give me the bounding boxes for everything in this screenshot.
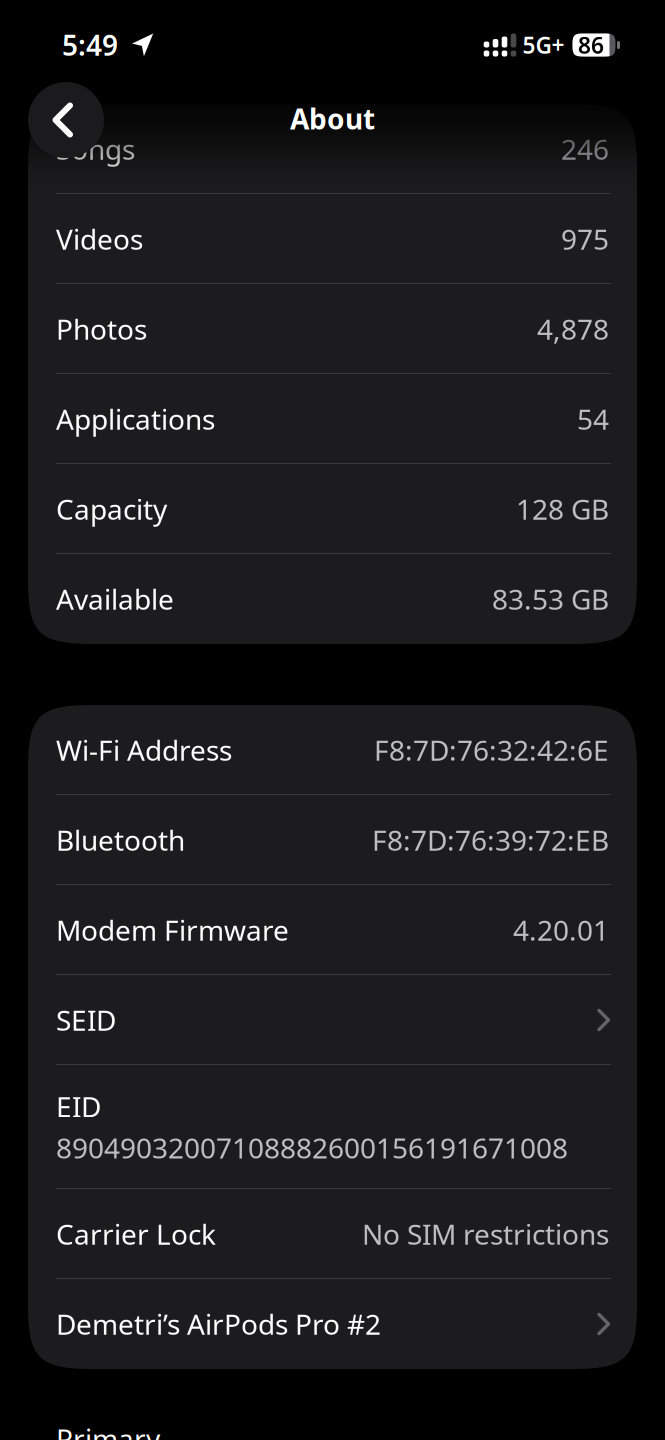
staticText: Primary xyxy=(56,1420,160,1440)
staticText: F8:7D:76:32:42:6E xyxy=(374,731,609,769)
button[interactable]: Back xyxy=(28,82,104,158)
button[interactable]: Carrier Lock xyxy=(28,1189,637,1279)
staticText: 975 xyxy=(561,220,609,258)
staticText: SEID xyxy=(56,1001,116,1039)
staticText: 246 xyxy=(561,130,609,168)
staticText: 4.20.01 xyxy=(513,911,609,949)
staticText: Modem Firmware xyxy=(56,911,289,949)
button[interactable]: Wi-Fi Address xyxy=(28,705,637,795)
staticText: Carrier Lock xyxy=(56,1215,216,1253)
button[interactable]: Demetri’s AirPods Pro #2 xyxy=(28,1279,637,1369)
staticText: 5G+ xyxy=(522,30,564,60)
staticText: Demetri’s AirPods Pro #2 xyxy=(56,1305,381,1343)
staticText: 5:49 xyxy=(62,26,118,64)
staticText: F8:7D:76:39:72:EB xyxy=(372,821,609,859)
staticText: Applications xyxy=(56,400,215,438)
button[interactable]: EID xyxy=(28,1065,637,1189)
staticText: Songs xyxy=(56,130,135,168)
button[interactable]: SEID xyxy=(28,975,637,1065)
staticText: 83.53 GB xyxy=(492,580,609,618)
staticText: 4,878 xyxy=(537,310,609,348)
button[interactable]: Videos xyxy=(28,194,637,284)
staticText: Capacity xyxy=(56,490,167,528)
button[interactable]: Photos xyxy=(28,284,637,374)
staticText: Wi-Fi Address xyxy=(56,731,232,769)
staticText: Videos xyxy=(56,220,143,258)
staticText: EID xyxy=(56,1088,101,1125)
staticText: Available xyxy=(56,580,174,618)
staticText: Bluetooth xyxy=(56,821,185,859)
staticText: Photos xyxy=(56,310,147,348)
staticText: No SIM restrictions xyxy=(362,1215,609,1253)
staticText: About xyxy=(290,100,375,137)
button[interactable]: Applications xyxy=(28,374,637,464)
staticText: 54 xyxy=(577,400,609,438)
staticText: 86 xyxy=(578,30,604,60)
button[interactable]: Capacity xyxy=(28,464,637,554)
staticText: 89049032007108882600156191671008 xyxy=(56,1129,568,1166)
button[interactable]: Available xyxy=(28,554,637,644)
staticText: 128 GB xyxy=(516,490,609,528)
button[interactable]: Bluetooth xyxy=(28,795,637,885)
button[interactable]: Songs xyxy=(28,104,637,194)
button[interactable]: Modem Firmware xyxy=(28,885,637,975)
